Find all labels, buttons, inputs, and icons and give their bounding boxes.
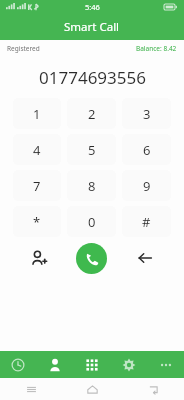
button[interactable]: Contacts bbox=[36, 351, 73, 378]
button[interactable]: Call bbox=[76, 243, 107, 274]
staticText: 1 bbox=[33, 105, 41, 123]
button[interactable]: 3 bbox=[122, 98, 171, 129]
staticText: Registered bbox=[7, 44, 40, 53]
button[interactable]: Menu bbox=[0, 378, 62, 400]
staticText: 6 bbox=[143, 141, 151, 159]
button[interactable]: Settings bbox=[110, 351, 147, 378]
staticText: Balance: 8.42 bbox=[136, 44, 177, 53]
button[interactable]: More bbox=[147, 351, 184, 378]
button[interactable]: 0 bbox=[67, 206, 116, 237]
button[interactable]: 4 bbox=[13, 134, 61, 165]
staticText: * bbox=[33, 213, 41, 231]
button[interactable]: 2 bbox=[67, 98, 116, 129]
button[interactable]: Add contact bbox=[13, 237, 65, 279]
staticText: Smart Call bbox=[64, 19, 120, 35]
button[interactable]: Dialpad bbox=[73, 351, 110, 378]
button[interactable]: # bbox=[122, 206, 171, 237]
button[interactable]: Recents bbox=[0, 351, 36, 378]
staticText: 3 bbox=[143, 105, 151, 123]
button[interactable]: Back bbox=[123, 378, 184, 400]
button[interactable]: * bbox=[13, 206, 61, 237]
button[interactable]: 8 bbox=[67, 170, 116, 201]
button[interactable]: 5 bbox=[67, 134, 116, 165]
staticText: # bbox=[142, 213, 151, 231]
staticText: 5 bbox=[88, 141, 96, 159]
button[interactable]: 9 bbox=[122, 170, 171, 201]
staticText: 5:46 bbox=[85, 2, 100, 12]
button[interactable]: 7 bbox=[13, 170, 61, 201]
button[interactable]: 6 bbox=[122, 134, 171, 165]
staticText: 0 bbox=[88, 213, 96, 231]
button[interactable]: 1 bbox=[13, 98, 61, 129]
staticText: 8 bbox=[88, 177, 96, 195]
staticText: 4 bbox=[33, 141, 41, 159]
staticText: 9 bbox=[143, 177, 151, 195]
button[interactable]: Backspace bbox=[118, 237, 171, 279]
staticText: 01774693556 bbox=[39, 66, 146, 89]
staticText: 2 bbox=[88, 105, 96, 123]
staticText: 7 bbox=[33, 177, 41, 195]
button[interactable]: Home bbox=[62, 378, 123, 400]
